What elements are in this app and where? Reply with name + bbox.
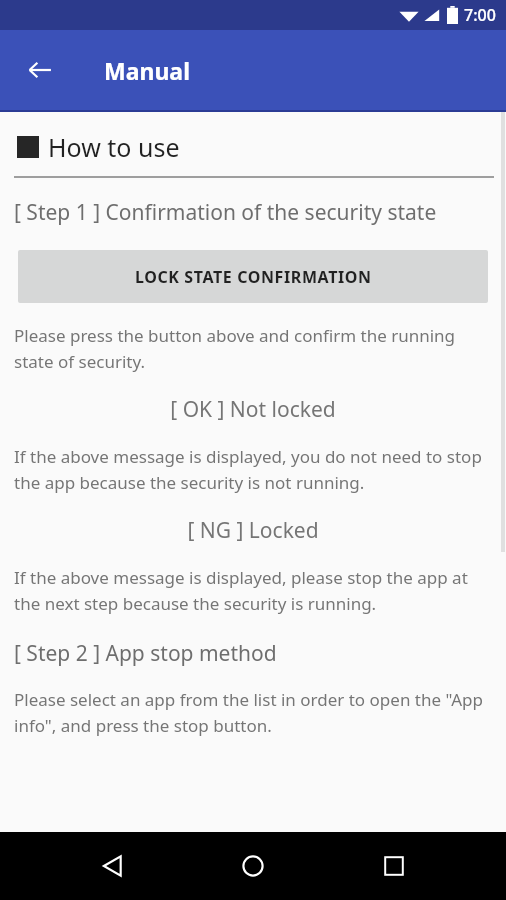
button[interactable]: Home <box>225 838 281 894</box>
staticText: 7:00 <box>464 4 496 26</box>
button[interactable]: Back <box>85 838 141 894</box>
button[interactable]: Recent apps <box>366 838 422 894</box>
staticText: Manual <box>104 55 190 86</box>
staticText: [ Step 1 ] Confirmation of the security … <box>14 198 437 227</box>
staticText: Please select an app from the list in or… <box>14 688 492 737</box>
staticText: [ OK ] Not locked <box>14 395 492 424</box>
staticText: [ NG ] Locked <box>14 516 492 545</box>
staticText: Please press the button above and confir… <box>14 324 492 373</box>
staticText: If the above message is displayed, you d… <box>14 445 492 494</box>
button[interactable]: Back <box>16 46 64 94</box>
button[interactable]: LOCK STATE CONFIRMATION <box>18 250 488 303</box>
staticText: If the above message is displayed, pleas… <box>14 566 492 615</box>
staticText: [ Step 2 ] App stop method <box>14 639 277 668</box>
staticText: How to use <box>48 130 180 164</box>
staticText: LOCK STATE CONFIRMATION <box>135 266 372 288</box>
